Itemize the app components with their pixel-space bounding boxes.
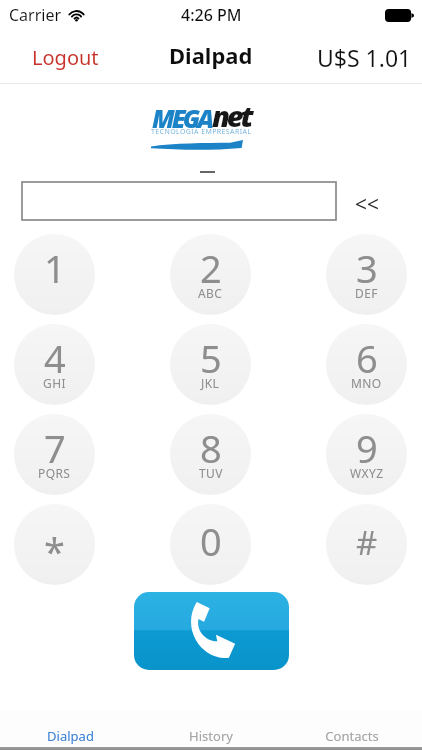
staticText: History xyxy=(189,727,233,745)
staticText: 4:26 PM xyxy=(181,4,242,26)
staticText: 0 xyxy=(200,515,222,567)
button[interactable]: 3 xyxy=(326,234,407,315)
staticText: MEGA xyxy=(152,101,212,135)
staticText: DEF xyxy=(355,285,378,301)
button[interactable]: 1 xyxy=(14,234,95,315)
button[interactable]: # xyxy=(326,504,407,585)
button[interactable]: 2 xyxy=(170,234,251,315)
staticText: Dialpad xyxy=(169,40,253,70)
staticText: net xyxy=(212,96,251,135)
staticText: Dialpad xyxy=(47,727,94,745)
staticText: Carrier xyxy=(9,4,62,26)
staticText: 2 xyxy=(200,242,222,294)
staticText: ABC xyxy=(198,285,223,301)
button[interactable]: Contacts xyxy=(281,710,422,745)
staticText: WXYZ xyxy=(350,465,384,481)
button[interactable]: Backspace xyxy=(339,185,395,223)
staticText: 9 xyxy=(356,422,378,474)
button[interactable]: 4 xyxy=(14,324,95,405)
button[interactable]: 9 xyxy=(326,414,407,495)
staticText: Contacts xyxy=(325,727,379,745)
staticText: << xyxy=(355,190,380,219)
staticText: TUV xyxy=(199,465,223,481)
button[interactable]: Logout xyxy=(17,36,114,79)
staticText: 5 xyxy=(200,332,222,384)
staticText: 1 xyxy=(44,242,66,294)
button[interactable]: 0 xyxy=(170,504,251,585)
staticText: * xyxy=(44,525,65,577)
staticText: 7 xyxy=(44,422,66,474)
staticText: 6 xyxy=(356,332,378,384)
button[interactable]: * xyxy=(14,504,95,585)
staticText: 4 xyxy=(44,332,66,384)
staticText: # xyxy=(356,520,378,565)
button[interactable]: 6 xyxy=(326,324,407,405)
button[interactable]: 7 xyxy=(14,414,95,495)
staticText: Logout xyxy=(32,44,99,71)
staticText: MNO xyxy=(351,375,382,391)
button[interactable]: History xyxy=(140,710,281,745)
staticText: TECNOLOGIA EMPRESARIAL xyxy=(151,127,252,137)
staticText: PQRS xyxy=(38,465,71,481)
button[interactable]: 5 xyxy=(170,324,251,405)
staticText: U$S 1.01 xyxy=(317,42,412,73)
button[interactable]: Dialpad xyxy=(0,710,140,745)
staticText: 3 xyxy=(356,242,378,294)
staticText: JKL xyxy=(201,375,220,391)
staticText: GHI xyxy=(43,375,66,391)
button[interactable]: 8 xyxy=(170,414,251,495)
staticText: 8 xyxy=(200,422,222,474)
button[interactable]: Call xyxy=(134,592,289,670)
